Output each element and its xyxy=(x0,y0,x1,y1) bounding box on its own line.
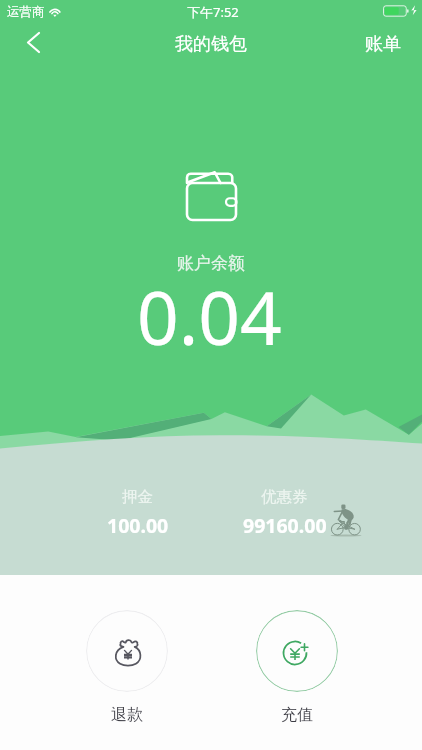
staticText: 100.00 xyxy=(107,512,169,539)
button[interactable]: 充值 xyxy=(256,610,338,692)
staticText: 99160.00 xyxy=(243,512,327,539)
staticText: 账户余额 xyxy=(177,253,245,274)
button[interactable]: 账单 xyxy=(349,26,422,62)
staticText: 运营商 xyxy=(7,4,45,20)
staticText: 优惠券 xyxy=(261,487,308,507)
staticText: 充值 xyxy=(281,705,313,725)
staticText: 退款 xyxy=(111,705,143,725)
staticText: 0.04 xyxy=(137,267,282,366)
staticText: 押金 xyxy=(122,487,153,507)
staticText: 下午7:52 xyxy=(187,3,239,21)
button[interactable]: 退款 xyxy=(86,610,168,692)
staticText: 我的钱包 xyxy=(175,33,247,56)
staticText: 账单 xyxy=(365,33,401,55)
button[interactable]: Back xyxy=(0,26,48,62)
